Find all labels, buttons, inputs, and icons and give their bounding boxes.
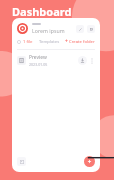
button[interactable]: More options bbox=[89, 56, 95, 65]
button[interactable]: + bbox=[65, 38, 95, 45]
staticText: Create folder bbox=[69, 39, 95, 45]
button[interactable]: Gallery bbox=[17, 157, 26, 166]
staticText: Dashboard bbox=[12, 4, 72, 19]
staticText: Templates bbox=[39, 39, 60, 45]
button[interactable]: Lorem ipsum bbox=[17, 23, 95, 34]
button[interactable]: Add bbox=[84, 156, 95, 167]
staticText: 1 file bbox=[23, 39, 33, 45]
button[interactable]: Copy bbox=[87, 25, 95, 33]
button[interactable]: Preview bbox=[17, 54, 95, 67]
staticText: 2023.01.05 bbox=[29, 62, 48, 67]
staticText: Preview bbox=[29, 54, 47, 61]
button[interactable]: Edit bbox=[76, 25, 84, 33]
button[interactable]: Download bbox=[78, 56, 87, 65]
staticText: Lorem ipsum bbox=[32, 27, 65, 34]
staticText: + bbox=[65, 38, 68, 45]
